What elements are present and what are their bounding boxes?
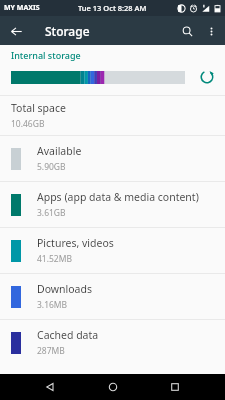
- staticText: 41.52MB: [37, 253, 72, 265]
- staticText: Downloads: [37, 282, 92, 296]
- button[interactable]: Downloads: [0, 274, 225, 319]
- button[interactable]: Pictures, videos: [0, 228, 225, 273]
- staticText: Internal storage: [11, 49, 81, 61]
- staticText: MY MAXIS: [4, 3, 40, 13]
- button[interactable]: Recent apps: [162, 374, 188, 400]
- button[interactable]: Search: [175, 19, 199, 43]
- staticText: Cached data: [37, 328, 99, 342]
- button[interactable]: Cached data: [0, 320, 225, 365]
- staticText: Apps (app data & media content): [37, 190, 199, 204]
- staticText: Pictures, videos: [37, 236, 114, 250]
- button[interactable]: Apps (app data & media content): [0, 182, 225, 227]
- button[interactable]: Total space: [0, 96, 225, 135]
- staticText: Storage: [45, 23, 90, 39]
- button[interactable]: Refresh: [194, 65, 220, 89]
- staticText: Tue 13 Oct 8:28 AM: [78, 3, 147, 13]
- staticText: 3.61GB: [37, 207, 66, 219]
- staticText: 287MB: [37, 345, 65, 357]
- staticText: Total space: [11, 101, 66, 115]
- staticText: Available: [37, 144, 82, 158]
- staticText: 10.46GB: [11, 118, 45, 130]
- button[interactable]: Available: [0, 136, 225, 181]
- button[interactable]: Back: [37, 374, 63, 400]
- staticText: 5.90GB: [37, 161, 66, 173]
- button[interactable]: More options: [199, 19, 223, 43]
- button[interactable]: Home: [100, 374, 126, 400]
- staticText: 3.16MB: [37, 299, 68, 311]
- button[interactable]: Navigate up: [4, 19, 28, 43]
